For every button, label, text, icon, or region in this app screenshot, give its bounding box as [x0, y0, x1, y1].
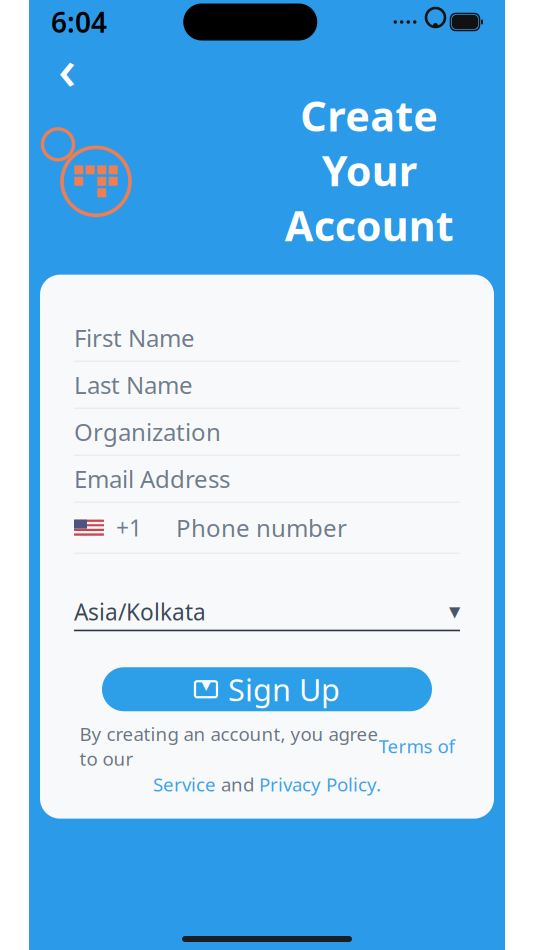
staticText: ▼: [201, 678, 210, 692]
staticText: Create Your Account: [284, 88, 453, 253]
staticText: Organization: [74, 416, 221, 448]
staticText: 6:04: [51, 3, 107, 41]
button[interactable]: Back: [47, 50, 87, 86]
staticText: +1: [116, 513, 142, 543]
button[interactable]: ▼: [102, 667, 432, 711]
staticText: Last Name: [74, 369, 193, 401]
staticText: Asia/Kolkata: [74, 597, 206, 627]
button[interactable]: Privacy Policy.: [259, 772, 381, 797]
button[interactable]: Asia/Kolkata: [74, 594, 460, 631]
staticText: Email Address: [74, 463, 230, 495]
staticText: Phone number: [176, 512, 347, 544]
button[interactable]: Terms of: [378, 734, 454, 758]
staticText: First Name: [74, 322, 195, 354]
staticText: ‹: [58, 31, 76, 105]
staticText: Terms of: [378, 734, 454, 758]
button[interactable]: Service: [153, 772, 216, 797]
staticText: By creating an account, you agree to our: [79, 721, 378, 771]
staticText: Sign Up: [228, 669, 340, 710]
staticText: and: [216, 772, 259, 797]
staticText: Privacy Policy.: [259, 772, 381, 797]
staticText: Service: [153, 772, 216, 797]
staticText: ▼: [449, 603, 460, 620]
